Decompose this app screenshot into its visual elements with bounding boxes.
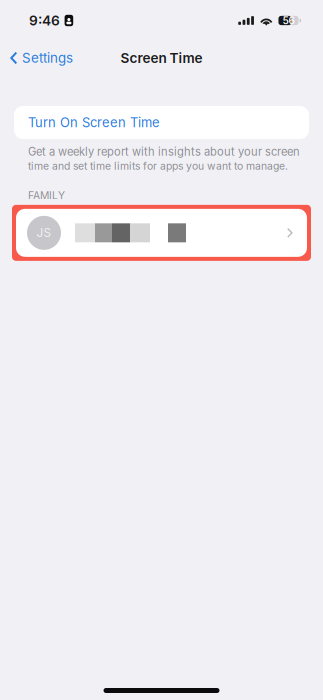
staticText: Get a weekly report with insights about … (28, 145, 300, 158)
staticText: 56 (282, 14, 294, 27)
staticText: 9:46 (29, 12, 60, 29)
button[interactable]: JS (16, 209, 307, 257)
staticText: FAMILY (28, 189, 65, 202)
staticText: Turn On Screen Time (28, 115, 160, 130)
staticText: JS (36, 226, 51, 240)
staticText: Screen Time (120, 50, 202, 66)
staticText: time and set time limits for apps you wa… (28, 160, 288, 172)
staticText: Settings (22, 50, 73, 66)
button[interactable]: Turn On Screen Time (14, 106, 309, 139)
button[interactable]: Settings (0, 45, 81, 71)
